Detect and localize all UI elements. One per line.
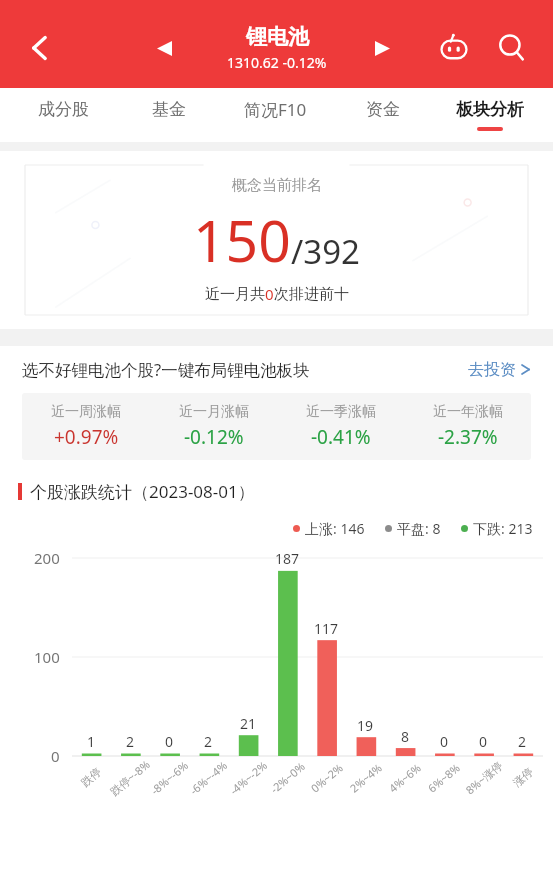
button[interactable]: 板块分析 [436,88,543,142]
staticText: 2 [518,732,527,751]
staticText: 平盘: 8 [397,519,441,538]
staticText: 跌停 [78,765,104,789]
button[interactable]: Back [16,24,64,72]
staticText: +0.97% [54,424,119,450]
button[interactable]: AI assistant [431,25,477,71]
staticText: 0 [265,284,274,304]
button[interactable]: 基金 [116,88,222,142]
staticText: 涨停 [510,765,536,789]
staticText: 概念当前排名 [232,176,322,195]
staticText: 下跌: 213 [473,519,533,538]
staticText: 0%~2% [308,759,346,795]
staticText: 上涨: 146 [305,519,365,538]
staticText: 8%~涨停 [462,758,506,797]
staticText: 4%~6% [386,759,424,795]
staticText: -0.12% [184,424,244,450]
staticText: 21 [240,714,257,733]
button[interactable]: 近一周涨幅 [22,403,150,450]
button[interactable]: 资金 [329,88,436,142]
staticText: 1 [87,732,96,751]
staticText: 次排进前十 [274,285,349,304]
staticText: 0 [51,746,60,766]
staticText: 简况F10 [244,98,307,121]
staticText: 117 [314,619,339,638]
staticText: 锂电池 [246,24,309,50]
staticText: -8%~-6% [147,757,191,798]
staticText: 近一季涨幅 [306,403,376,421]
staticText: 0 [479,732,488,751]
staticText: 选不好锂电池个股?一键布局锂电池板块 [22,358,310,381]
staticText: 成分股 [38,99,89,120]
staticText: 近一周涨幅 [51,403,121,421]
button[interactable]: 近一季涨幅 [277,403,404,450]
staticText: 187 [275,549,300,568]
button[interactable]: 成分股 [10,88,116,142]
staticText: 资金 [366,99,400,120]
button[interactable]: Search [489,25,535,71]
staticText: -2%~0% [267,759,308,796]
button[interactable]: Previous sector [144,28,184,68]
staticText: 0 [165,732,174,751]
button[interactable]: 近一年涨幅 [404,403,531,450]
button[interactable]: 选不好锂电池个股?一键布局锂电池板块 [22,358,531,381]
staticText: 200 [34,548,60,568]
staticText: -4%~-2% [226,757,270,798]
staticText: 6%~8% [425,759,463,795]
button[interactable]: Next sector [362,28,402,68]
staticText: /392 [291,229,360,274]
button[interactable]: 近一月涨幅 [150,403,277,450]
staticText: 100 [34,647,60,667]
staticText: 跌停~-8% [107,756,153,799]
staticText: 近一年涨幅 [433,403,503,421]
staticText: 近一月涨幅 [179,403,249,421]
staticText: 板块分析 [456,99,524,120]
staticText: 8 [401,727,410,746]
button[interactable]: 简况F10 [222,88,329,142]
staticText: 1310.62 -0.12% [227,53,327,72]
staticText: 2 [126,732,135,751]
staticText: 近一月共 [205,285,265,304]
staticText: 去投资 [468,360,516,380]
staticText: -2.37% [438,424,498,450]
staticText: 2%~4% [347,759,385,795]
staticText: -6%~-4% [186,757,230,798]
staticText: 150 [193,201,291,279]
staticText: 0 [440,732,449,751]
staticText: 19 [357,716,374,735]
staticText: 个股涨跌统计（2023-08-01） [30,480,255,503]
staticText: 基金 [152,99,186,120]
staticText: -0.41% [311,424,371,450]
staticText: 2 [204,732,213,751]
